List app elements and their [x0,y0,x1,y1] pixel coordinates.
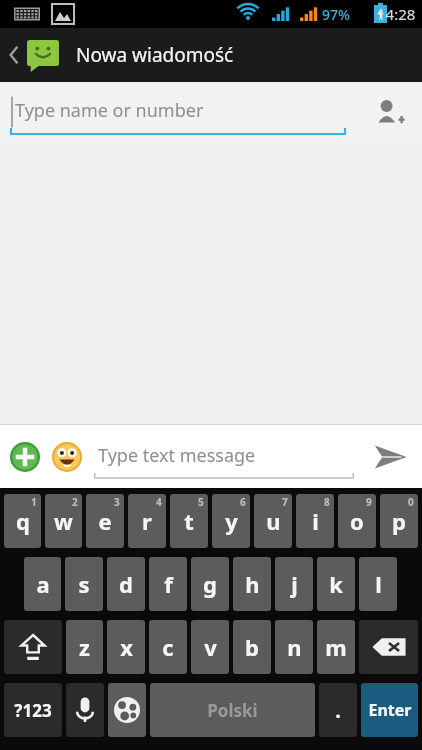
staticText: ?123 [14,699,52,722]
button[interactable]: Add attachment [4,436,46,478]
button[interactable]: Type name or number [10,89,346,137]
staticText: c [162,632,174,662]
staticText: m [325,632,347,662]
button[interactable]: Shift [4,620,62,674]
staticText: g [203,569,217,599]
staticText: 1 [31,495,37,509]
staticText: Polski [207,699,258,722]
staticText: a [36,569,50,599]
staticText: Enter [368,699,412,721]
button[interactable]: Polski [150,683,315,737]
staticText: 6 [240,495,246,509]
button[interactable]: p [380,494,418,548]
button[interactable]: l [359,557,397,611]
button[interactable]: o [338,494,376,548]
button[interactable]: t [170,494,208,548]
button[interactable]: q [4,494,41,548]
button[interactable]: f [149,557,187,611]
button[interactable]: Voice input [66,683,104,737]
staticText: Nowa wiadomość [76,42,234,68]
staticText: x [120,632,133,662]
staticText: 2 [72,495,78,509]
button[interactable]: Type text message [94,434,354,480]
staticText: n [287,632,302,662]
staticText: 0 [408,495,414,509]
button[interactable]: m [317,620,355,674]
staticText: s [78,569,90,599]
button[interactable]: b [233,620,271,674]
staticText: t [184,506,194,536]
staticText: 8 [324,495,330,509]
button[interactable]: j [275,557,313,611]
staticText: p [392,506,406,536]
button[interactable]: Change language [108,683,146,737]
button[interactable]: . [319,683,357,737]
button[interactable]: i [296,494,334,548]
button[interactable]: Add recipient from contacts [362,86,416,140]
button[interactable]: Insert emoticon [46,436,88,478]
staticText: y [225,506,238,536]
staticText: 7 [282,495,288,509]
staticText: . [335,697,341,724]
button[interactable]: Delete [359,620,418,674]
button[interactable]: c [149,620,187,674]
button[interactable]: d [107,557,145,611]
staticText: 97% [322,5,350,24]
button[interactable]: s [65,557,103,611]
staticText: k [329,569,343,599]
button[interactable]: y [212,494,250,548]
button[interactable]: Navigate up [0,28,66,82]
staticText: 14:28 [377,4,416,24]
staticText: f [164,569,173,599]
button[interactable]: x [107,620,145,674]
staticText: Type text message [98,443,256,468]
staticText: u [266,506,281,536]
button[interactable]: a [24,557,61,611]
staticText: r [142,506,152,536]
button[interactable]: u [254,494,292,548]
staticText: b [245,632,259,662]
button[interactable]: n [275,620,313,674]
button[interactable]: Send [362,429,418,485]
button[interactable]: Enter [361,683,418,737]
staticText: z [79,632,90,662]
staticText: o [350,506,364,536]
staticText: l [375,569,382,599]
staticText: 9 [366,495,372,509]
staticText: v [204,632,217,662]
staticText: q [16,506,30,536]
button[interactable]: r [128,494,166,548]
button[interactable]: z [66,620,103,674]
button[interactable]: h [233,557,271,611]
button[interactable]: w [45,494,82,548]
staticText: h [245,569,260,599]
staticText: i [312,506,319,536]
staticText: d [119,569,133,599]
staticText: 5 [198,495,204,509]
staticText: w [54,506,73,536]
button[interactable]: ?123 [4,683,62,737]
button[interactable]: e [86,494,124,548]
button[interactable]: g [191,557,229,611]
button[interactable]: k [317,557,355,611]
staticText: 3 [114,495,120,509]
staticText: e [98,506,112,536]
staticText: 4 [156,495,162,509]
button[interactable]: v [191,620,229,674]
staticText: j [291,569,298,599]
staticText: Type name or number [15,98,204,123]
